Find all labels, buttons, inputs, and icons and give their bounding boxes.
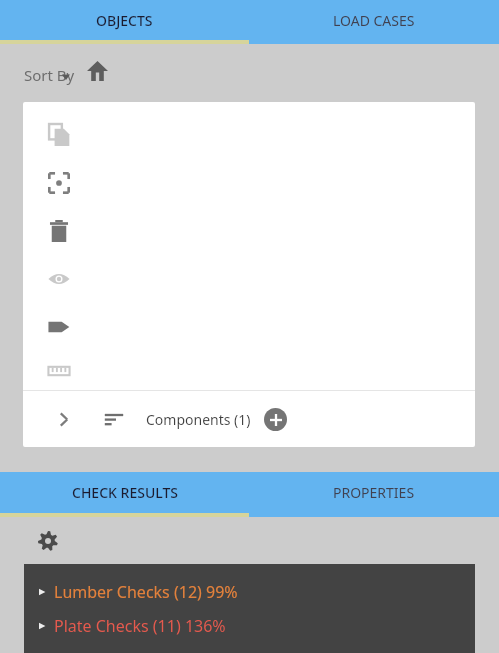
staticText: LOAD CASES [333,11,415,30]
button[interactable]: PROPERTIES [249,472,499,513]
button[interactable]: Add component [264,408,287,431]
button[interactable]: Expand [48,404,78,434]
staticText: Lumber Checks (12) 99% [54,581,238,603]
button[interactable]: LOAD CASES [249,0,499,40]
staticText: Sort By [24,65,75,85]
button[interactable]: Components (1) [104,409,251,429]
button[interactable]: Label [35,303,83,351]
staticText: OBJECTS [96,11,153,30]
button[interactable]: Duplicate [35,111,83,159]
button[interactable]: CHECK RESULTS [0,472,249,513]
button[interactable]: Home [82,55,112,85]
staticText: Components (1) [146,410,251,429]
button[interactable]: Delete [35,207,83,255]
button[interactable]: Visibility [35,255,83,303]
staticText: PROPERTIES [333,483,415,502]
button[interactable]: Sort By [24,65,75,85]
staticText: CHECK RESULTS [72,483,178,502]
button[interactable]: Center focus [35,159,83,207]
button[interactable]: Lumber Checks (12) 99% [24,581,475,603]
button[interactable]: Plate Checks (11) 136% [24,615,475,637]
staticText: Plate Checks (11) 136% [54,615,226,637]
button[interactable]: OBJECTS [0,0,249,40]
button[interactable]: Measure [35,351,83,390]
button[interactable]: Settings [33,526,63,556]
